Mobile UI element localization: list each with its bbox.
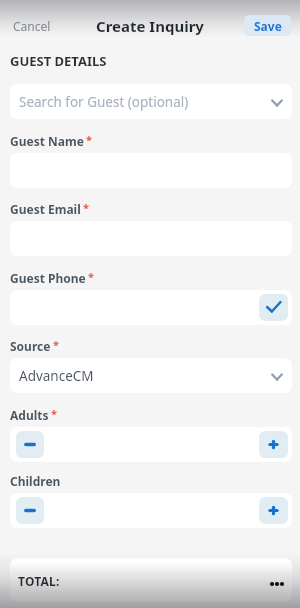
button[interactable]: More options — [265, 572, 289, 596]
staticText: Cancel — [13, 18, 51, 34]
button[interactable]: AdvanceCM — [10, 358, 292, 393]
button[interactable]: Increase — [259, 497, 288, 524]
staticText: Adults — [10, 407, 49, 423]
staticText: Create Inquiry — [96, 16, 204, 36]
staticText: Search for Guest (optional) — [19, 93, 189, 111]
button[interactable]: Verify phone number — [259, 294, 288, 321]
staticText: AdvanceCM — [19, 367, 94, 385]
staticText: * — [83, 200, 89, 215]
staticText: Children — [10, 473, 61, 489]
staticText: Save — [254, 18, 282, 34]
staticText: Guest Email — [10, 201, 81, 217]
staticText: * — [86, 132, 92, 147]
staticText: * — [53, 337, 59, 352]
button[interactable]: Decrease — [16, 497, 44, 524]
staticText: * — [88, 269, 94, 284]
button[interactable]: Search for Guest (optional) — [10, 84, 292, 119]
staticText: Guest Phone — [10, 270, 86, 286]
staticText: TOTAL: — [18, 573, 60, 589]
button[interactable]: Cancel — [7, 12, 57, 40]
button[interactable]: Save — [244, 15, 291, 36]
button[interactable]: TOTAL: — [10, 558, 292, 601]
button[interactable]: Decrease — [16, 431, 44, 458]
button[interactable]: Increase — [259, 431, 288, 458]
staticText: Guest Name — [10, 133, 84, 149]
staticText: * — [51, 406, 57, 421]
staticText: Source — [10, 338, 51, 354]
staticText: GUEST DETAILS — [10, 52, 107, 70]
